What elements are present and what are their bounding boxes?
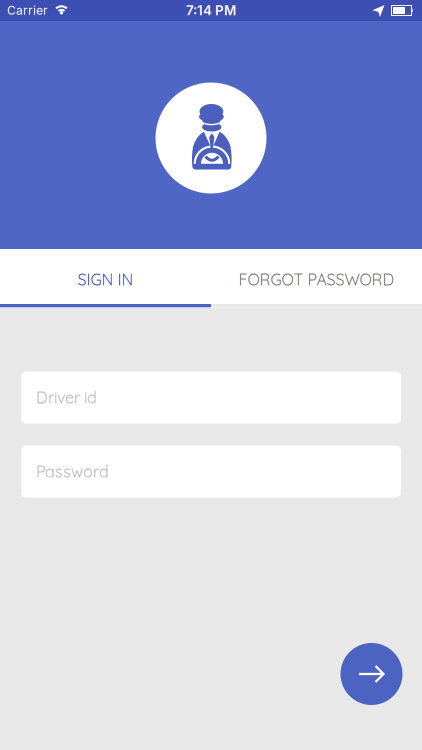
staticText: FORGOT PASSWORD <box>238 269 394 289</box>
textField[interactable]: Password <box>21 445 401 497</box>
staticText: Carrier <box>7 3 48 18</box>
staticText: Password <box>36 461 109 481</box>
button[interactable]: SIGN IN <box>0 249 211 304</box>
textField[interactable]: Driver id <box>21 371 401 423</box>
button[interactable]: FORGOT PASSWORD <box>211 249 422 304</box>
staticText: Driver id <box>36 387 97 407</box>
staticText: SIGN IN <box>77 269 133 289</box>
staticText: 7:14 PM <box>186 2 236 18</box>
button[interactable]: Sign in <box>340 643 402 705</box>
